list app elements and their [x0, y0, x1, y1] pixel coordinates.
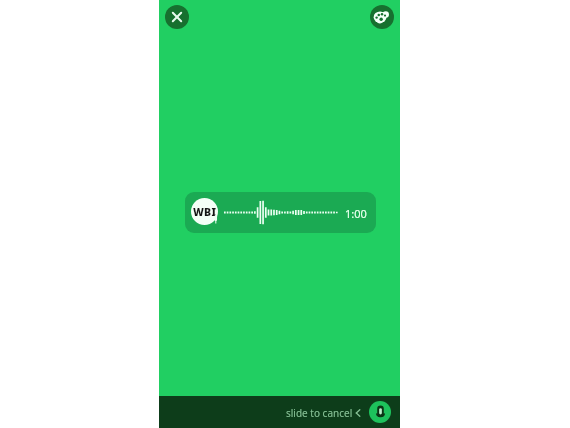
- button[interactable]: Change background colour: [370, 5, 394, 29]
- button[interactable]: WBI: [185, 192, 376, 233]
- button[interactable]: Close: [165, 5, 189, 29]
- staticText: 1:00: [345, 206, 367, 221]
- button[interactable]: Recording microphone: [369, 401, 391, 423]
- button[interactable]: slide to cancel: [284, 403, 363, 423]
- staticText: slide to cancel: [286, 406, 353, 420]
- staticText: WBI: [193, 205, 217, 219]
